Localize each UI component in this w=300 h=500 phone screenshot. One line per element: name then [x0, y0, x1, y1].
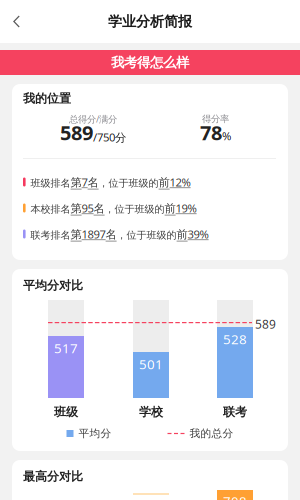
- staticText: 学业分析简报: [108, 13, 192, 30]
- staticText: 78%: [200, 119, 231, 146]
- staticText: 得分率: [202, 113, 229, 125]
- staticText: 联考排名第1897名，位于班级的前39%: [31, 226, 209, 241]
- staticText: 平均分对比: [23, 278, 83, 293]
- staticText: 501: [139, 355, 163, 373]
- button[interactable]: 我考得怎么样: [0, 50, 300, 75]
- staticText: 528: [223, 330, 247, 348]
- staticText: 我的总分: [189, 427, 233, 440]
- staticText: 我考得怎么样: [111, 54, 189, 71]
- staticText: 班级: [54, 404, 78, 419]
- staticText: 589: [255, 316, 276, 332]
- staticText: 最高分对比: [23, 469, 83, 484]
- staticText: 班级排名第7名，位于班级的前12%: [31, 174, 191, 189]
- staticText: 517: [54, 339, 78, 357]
- staticText: 平均分: [78, 427, 111, 440]
- staticText: 我的位置: [23, 91, 71, 106]
- staticText: 学校: [139, 404, 163, 419]
- staticText: 708: [223, 492, 247, 500]
- staticText: 总得分/满分: [69, 113, 117, 125]
- staticText: 联考: [223, 404, 247, 419]
- button[interactable]: Back: [0, 4, 34, 39]
- staticText: 589/750分: [60, 119, 126, 146]
- staticText: 本校排名第95名，位于班级的前19%: [31, 200, 197, 215]
